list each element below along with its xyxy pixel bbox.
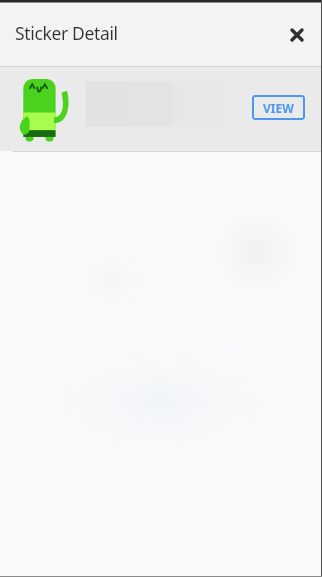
button[interactable]: VIEW [252,95,305,120]
staticText: VIEW [263,100,294,116]
staticText: Sticker Detail [15,21,118,45]
button[interactable]: Close [278,16,316,54]
button[interactable]: VIEW [0,67,322,151]
